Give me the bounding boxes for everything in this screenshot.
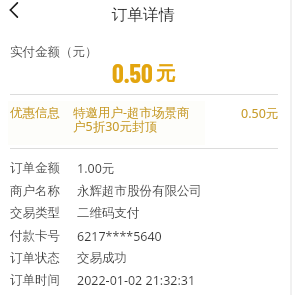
button[interactable]: Back — [3, 0, 25, 21]
staticText: 订单金额 — [10, 160, 60, 176]
staticText: 商户名称 — [10, 183, 60, 199]
button[interactable]: 优惠信息 — [0, 100, 292, 147]
staticText: 交易类型 — [10, 205, 60, 221]
button[interactable]: 商户名称 — [0, 183, 292, 201]
staticText: 订单详情 — [0, 5, 289, 25]
staticText: 订单时间 — [10, 272, 60, 288]
button[interactable]: 订单金额 — [0, 160, 292, 178]
button[interactable]: 订单时间 — [0, 272, 292, 290]
button[interactable]: 付款卡号 — [0, 228, 292, 246]
staticText: 特邀用户-超市场景商 户5折30元封顶 — [73, 104, 190, 135]
staticText: 永辉超市股份有限公司 — [77, 183, 202, 199]
staticText: 实付金额（元） — [10, 44, 98, 60]
button[interactable]: 订单状态 — [0, 250, 292, 268]
staticText: 付款卡号 — [10, 228, 60, 244]
staticText: 0.50元 — [241, 105, 279, 122]
staticText: 二维码支付 — [77, 205, 140, 221]
staticText: 元 — [156, 61, 176, 86]
staticText: 优惠信息 — [10, 105, 60, 121]
staticText: 订单状态 — [10, 250, 60, 266]
staticText: 交易成功 — [77, 250, 127, 266]
staticText: 2022-01-02 21:32:31 — [77, 272, 196, 289]
staticText: 0.50 — [112, 57, 153, 88]
staticText: 1.00元 — [77, 160, 115, 177]
staticText: 6217****5640 — [77, 228, 162, 245]
button[interactable]: 交易类型 — [0, 205, 292, 223]
